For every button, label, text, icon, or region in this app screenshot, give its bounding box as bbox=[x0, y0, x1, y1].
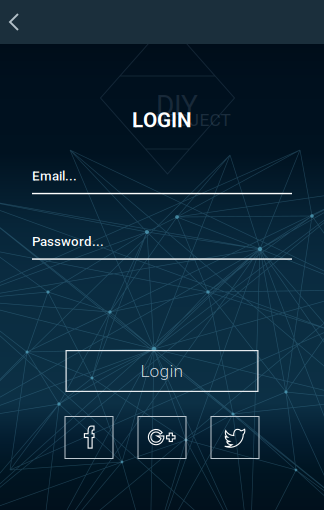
staticText: DIY bbox=[156, 89, 198, 122]
button[interactable]: Back bbox=[0, 0, 44, 44]
staticText: Login bbox=[140, 361, 183, 381]
button[interactable]: Sign in with Google bbox=[137, 416, 186, 459]
button[interactable]: Sign in with Facebook bbox=[64, 416, 113, 459]
button[interactable]: Login bbox=[65, 350, 258, 392]
staticText: Email... bbox=[32, 168, 77, 184]
button[interactable]: Sign in with Twitter bbox=[210, 416, 259, 459]
staticText: Password... bbox=[32, 234, 104, 249]
staticText: LOGIN bbox=[132, 108, 192, 132]
staticText: PROJECT bbox=[155, 110, 230, 130]
